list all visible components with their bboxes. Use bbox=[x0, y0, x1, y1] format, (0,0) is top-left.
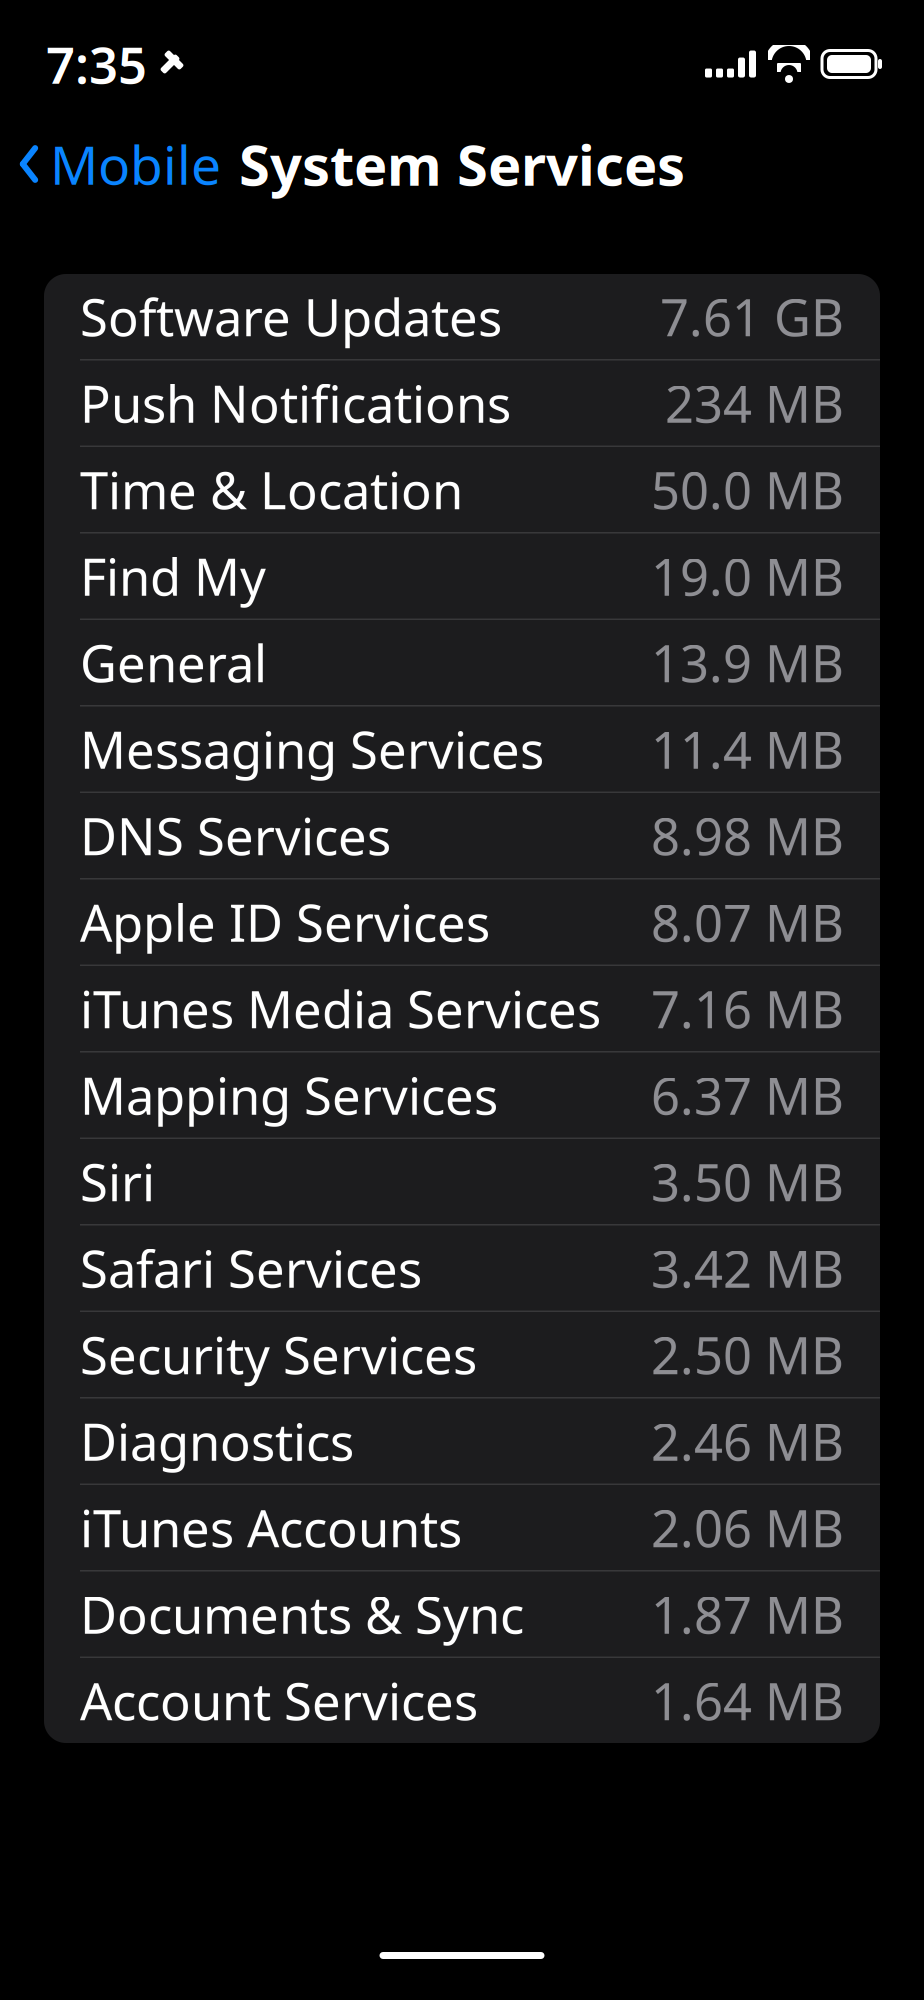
button[interactable]: Mobile bbox=[0, 117, 221, 211]
staticText: 11.4 MB bbox=[651, 715, 844, 783]
button[interactable]: Safari Services bbox=[44, 1225, 880, 1310]
button[interactable]: Account Services bbox=[44, 1658, 880, 1743]
button[interactable]: Mapping Services bbox=[44, 1052, 880, 1137]
staticText: System Services bbox=[239, 127, 685, 201]
staticText: iTunes Accounts bbox=[80, 1494, 462, 1561]
staticText: Messaging Services bbox=[80, 715, 544, 783]
staticText: Safari Services bbox=[80, 1234, 422, 1302]
staticText: 13.9 MB bbox=[651, 629, 844, 696]
button[interactable]: Apple ID Services bbox=[44, 879, 880, 964]
staticText: 2.06 MB bbox=[651, 1494, 844, 1561]
staticText: 7:35 bbox=[46, 30, 147, 98]
staticText: Software Updates bbox=[80, 283, 502, 350]
staticText: Push Notifications bbox=[80, 369, 511, 437]
button[interactable]: Messaging Services bbox=[44, 706, 880, 791]
staticText: 8.07 MB bbox=[651, 888, 844, 956]
staticText: 8.98 MB bbox=[651, 802, 844, 869]
button[interactable]: iTunes Media Services bbox=[44, 966, 880, 1051]
staticText: 6.37 MB bbox=[651, 1061, 844, 1129]
button[interactable]: Find My bbox=[44, 533, 880, 618]
staticText: iTunes Media Services bbox=[80, 975, 601, 1042]
staticText: 7.61 GB bbox=[660, 283, 844, 350]
staticText: 1.64 MB bbox=[651, 1667, 844, 1734]
staticText: Mobile bbox=[50, 129, 221, 199]
staticText: 19.0 MB bbox=[651, 542, 844, 610]
button[interactable]: Time & Location bbox=[44, 447, 880, 532]
button[interactable]: Diagnostics bbox=[44, 1398, 880, 1483]
button[interactable]: Software Updates bbox=[44, 274, 880, 359]
staticText: Diagnostics bbox=[80, 1407, 354, 1475]
staticText: General bbox=[80, 629, 267, 696]
button[interactable]: iTunes Accounts bbox=[44, 1485, 880, 1570]
button[interactable]: Documents & Sync bbox=[44, 1571, 880, 1656]
staticText: 2.46 MB bbox=[651, 1407, 844, 1475]
staticText: 7.16 MB bbox=[651, 975, 844, 1042]
staticText: 50.0 MB bbox=[651, 456, 844, 523]
button[interactable]: Siri bbox=[44, 1139, 880, 1224]
staticText: Account Services bbox=[80, 1667, 478, 1734]
button[interactable]: General bbox=[44, 620, 880, 705]
staticText: 3.50 MB bbox=[651, 1148, 844, 1215]
staticText: Time & Location bbox=[80, 456, 463, 523]
staticText: 3.42 MB bbox=[651, 1234, 844, 1302]
staticText: Mapping Services bbox=[80, 1061, 498, 1129]
staticText: Apple ID Services bbox=[80, 888, 490, 956]
staticText: Find My bbox=[80, 542, 266, 610]
staticText: 1.87 MB bbox=[651, 1580, 844, 1648]
button[interactable]: DNS Services bbox=[44, 793, 880, 878]
staticText: Security Services bbox=[80, 1321, 477, 1388]
button[interactable]: Push Notifications bbox=[44, 360, 880, 445]
staticText: Siri bbox=[80, 1148, 155, 1215]
staticText: 2.50 MB bbox=[651, 1321, 844, 1388]
staticText: DNS Services bbox=[80, 802, 391, 869]
button[interactable]: Security Services bbox=[44, 1312, 880, 1397]
staticText: 234 MB bbox=[665, 369, 844, 437]
staticText: Documents & Sync bbox=[80, 1580, 524, 1648]
